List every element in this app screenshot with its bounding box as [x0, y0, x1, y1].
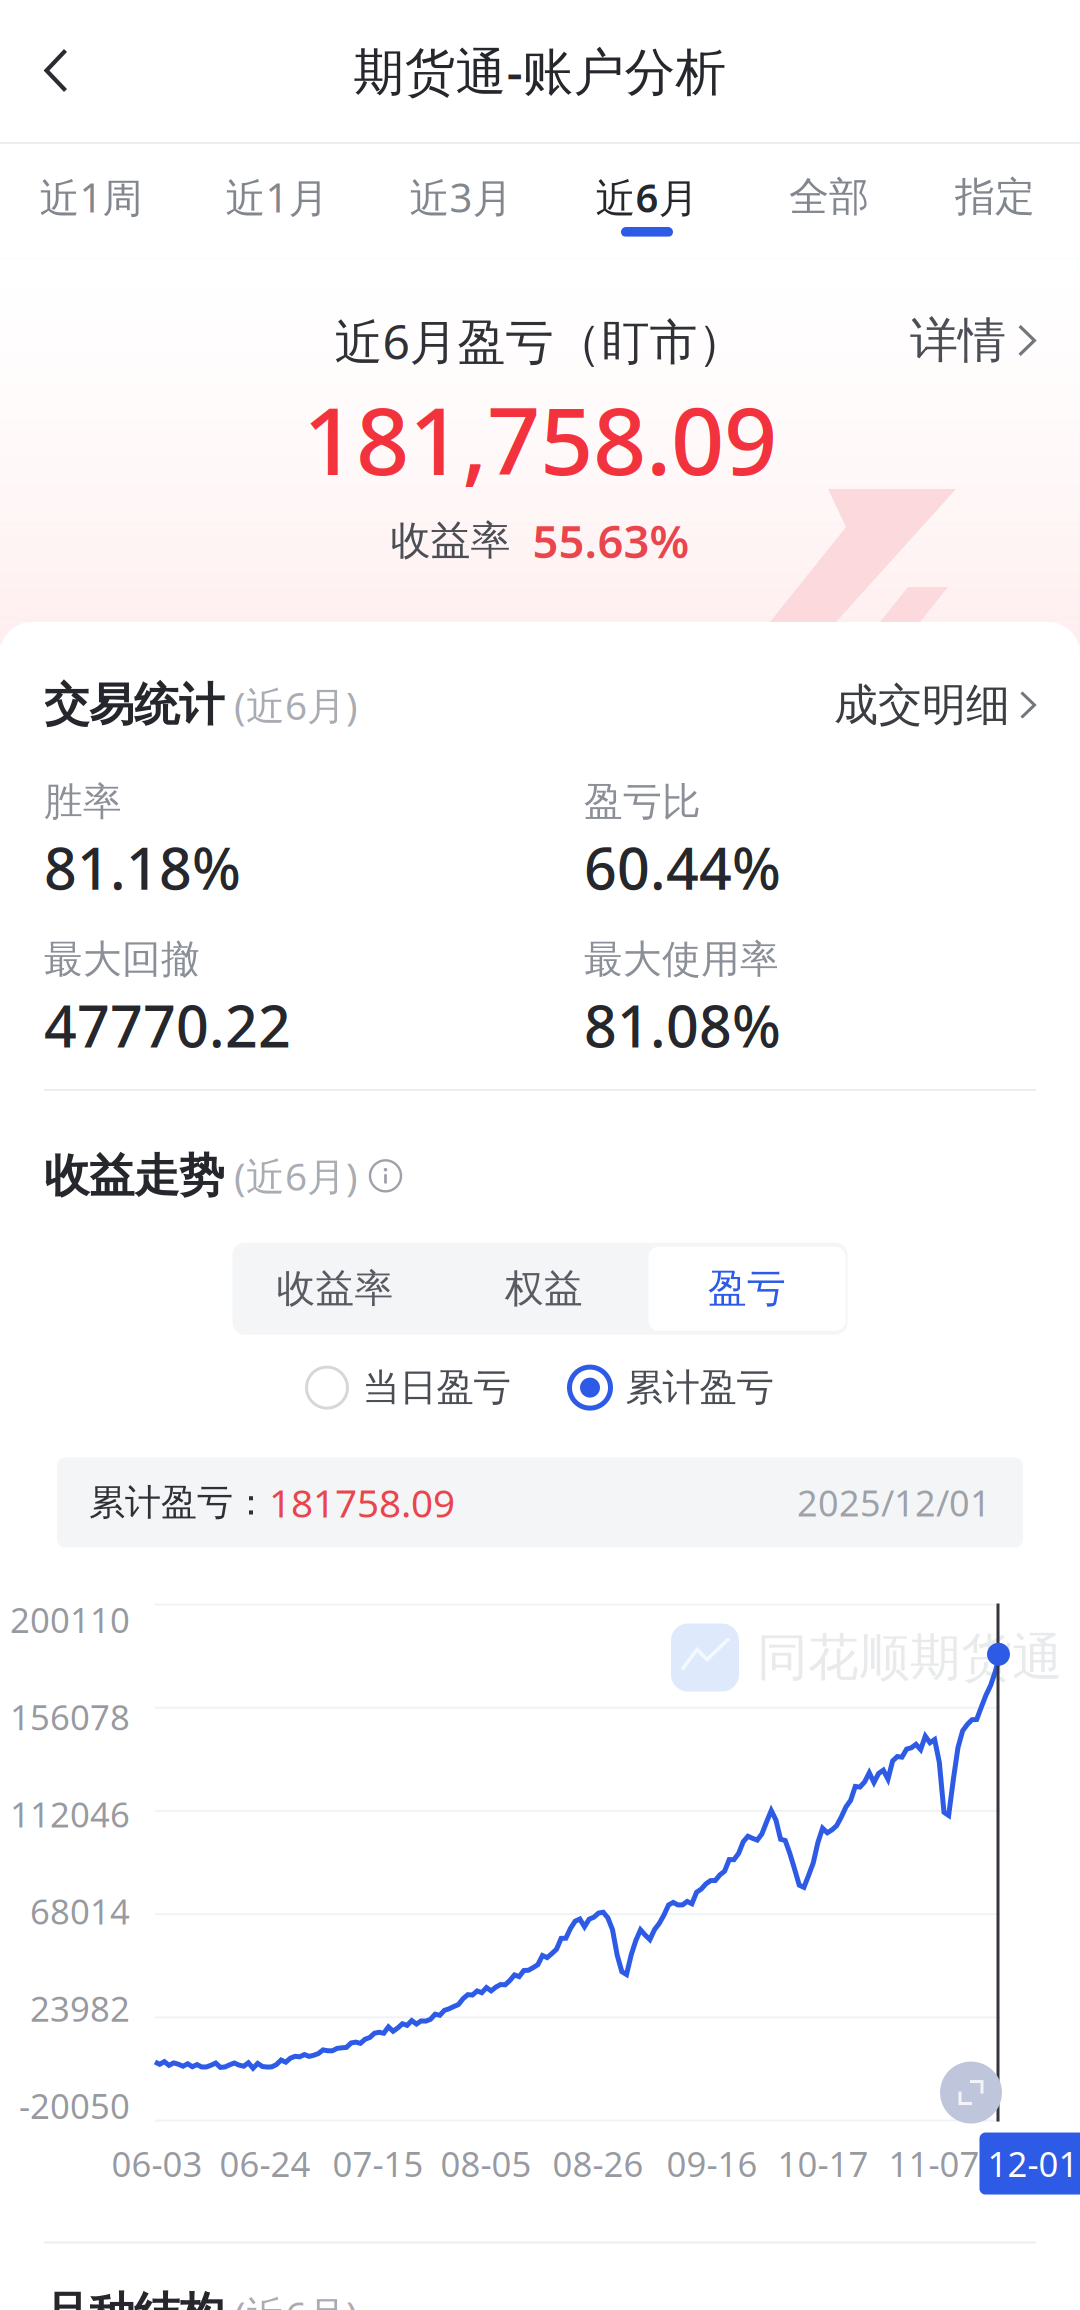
staticText: (近6月) [224, 2289, 358, 2310]
button[interactable]: 近3月 [391, 144, 531, 257]
staticText: -20050 [19, 2082, 130, 2128]
staticText: 权益 [505, 1265, 583, 1312]
staticText: 近6月 [595, 170, 698, 223]
button[interactable]: 详情 [910, 299, 1080, 382]
staticText: 近1周 [39, 170, 142, 223]
staticText: 60.44% [584, 829, 781, 906]
staticText: 55.63% [532, 511, 689, 571]
staticText: 成交明细 [834, 678, 1010, 732]
staticText: 09-16 [666, 2140, 757, 2186]
staticText: 同花顺期货通 [757, 1626, 1063, 1689]
staticText: 盈亏 [708, 1265, 786, 1312]
staticText: 81.18% [44, 829, 241, 906]
staticText: 胜率 [44, 778, 122, 825]
staticText: 10-17 [777, 2140, 868, 2186]
staticText: 近6月盈亏（盯市） [334, 309, 745, 373]
staticText: 最大回撤 [44, 936, 200, 983]
staticText: (近6月) [224, 1150, 358, 1201]
staticText: 盈亏比 [584, 778, 701, 825]
staticText: 品种结构 [44, 2286, 224, 2310]
button[interactable]: 权益 [439, 1243, 648, 1335]
button[interactable]: 近1周 [21, 144, 161, 257]
staticText: 收益走势 [44, 1148, 224, 1204]
button[interactable]: Back [0, 10, 112, 130]
button[interactable]: 成交明细 [834, 670, 1036, 740]
staticText: 收益率 [276, 1265, 393, 1312]
staticText: 68014 [30, 1888, 130, 1934]
staticText: 期货通-账户分析 [353, 37, 726, 104]
staticText: 指定 [955, 172, 1035, 221]
staticText: 81.08% [584, 987, 781, 1063]
staticText: 累计盈亏 [625, 1365, 773, 1411]
staticText: 181,758.09 [303, 377, 777, 501]
staticText: 近3月 [409, 170, 512, 223]
button[interactable]: 盈亏 [648, 1247, 849, 1331]
staticText: 12-01 [987, 2140, 1078, 2186]
staticText: 详情 [910, 311, 1006, 370]
staticText: 累计盈亏： [89, 1480, 269, 1525]
button[interactable]: 全部 [759, 144, 899, 257]
button[interactable]: 收益率 [230, 1243, 439, 1335]
staticText: 47770.22 [44, 987, 291, 1063]
staticText: 112046 [10, 1791, 130, 1837]
staticText: 07-15 [332, 2140, 423, 2186]
staticText: 08-26 [552, 2140, 643, 2186]
staticText: 2025/12/01 [797, 1479, 991, 1526]
staticText: 156078 [10, 1694, 130, 1740]
staticText: 06-24 [219, 2140, 310, 2186]
staticText: 近1月 [225, 170, 328, 223]
button[interactable]: 当日盈亏 [306, 1359, 510, 1417]
button[interactable]: Info [358, 1154, 401, 1197]
button[interactable]: 近6月 [577, 144, 717, 257]
staticText: 全部 [789, 172, 869, 221]
button[interactable]: 指定 [925, 144, 1065, 257]
staticText: 200110 [10, 1596, 130, 1642]
button[interactable]: 累计盈亏 [569, 1359, 773, 1417]
staticText: 08-05 [440, 2140, 531, 2186]
staticText: (近6月) [224, 679, 358, 731]
staticText: 06-03 [111, 2140, 202, 2186]
staticText: 181758.09 [269, 1477, 455, 1528]
button[interactable]: 近1月 [207, 144, 347, 257]
staticText: 11-07 [888, 2140, 979, 2186]
staticText: 当日盈亏 [362, 1365, 510, 1411]
staticText: 交易统计 [44, 677, 224, 733]
staticText: 23982 [30, 1985, 130, 2031]
staticText: 收益率 [390, 516, 510, 565]
staticText: 最大使用率 [584, 936, 779, 983]
